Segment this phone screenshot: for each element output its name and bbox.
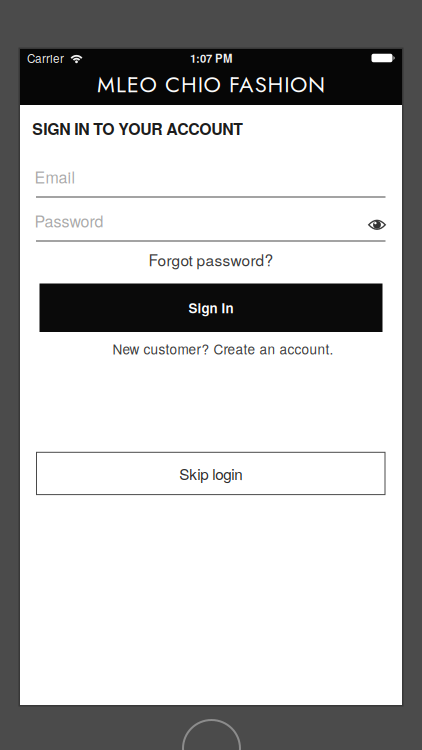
button[interactable]: Skip login — [36, 452, 385, 495]
button[interactable]: Forgot password? — [20, 250, 402, 268]
staticText: SIGN IN TO YOUR ACCOUNT — [32, 117, 243, 140]
button[interactable]: Show password — [368, 219, 386, 230]
staticText: Carrier — [27, 50, 64, 66]
staticText: 1:07 PM — [190, 50, 232, 66]
button[interactable]: New customer? Create an account. — [112, 340, 333, 356]
staticText: Password — [34, 209, 103, 232]
staticText: Skip login — [179, 463, 242, 484]
staticText: New customer? Create an account. — [112, 339, 333, 358]
button[interactable]: Sign In — [39, 283, 382, 332]
staticText: Email — [34, 165, 75, 188]
staticText: Sign In — [188, 298, 233, 317]
staticText: MLEO CHIO FASHION — [97, 69, 325, 100]
staticText: Forgot password? — [148, 248, 273, 270]
